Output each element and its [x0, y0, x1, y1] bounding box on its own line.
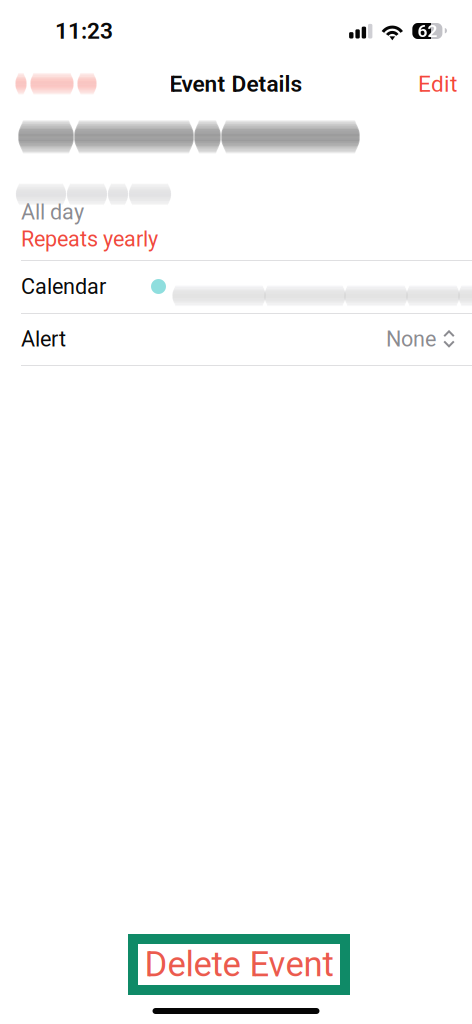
button[interactable]: Back	[0, 62, 104, 106]
button[interactable]: Edit	[404, 62, 472, 106]
staticText: All day	[21, 199, 84, 225]
button[interactable]: Alert	[0, 313, 472, 365]
staticText: Alert	[21, 326, 66, 352]
staticText: Delete Event	[144, 944, 333, 985]
staticText: Calendar	[21, 274, 106, 299]
staticText: Edit	[418, 71, 457, 97]
staticText: Repeats yearly	[21, 226, 158, 252]
staticText: 62	[417, 21, 437, 41]
button[interactable]: Calendar	[0, 260, 472, 313]
staticText: 11:23	[55, 18, 113, 44]
button[interactable]: Delete Event	[135, 939, 342, 990]
staticText: None	[386, 326, 436, 352]
staticText: Event Details	[169, 71, 302, 97]
